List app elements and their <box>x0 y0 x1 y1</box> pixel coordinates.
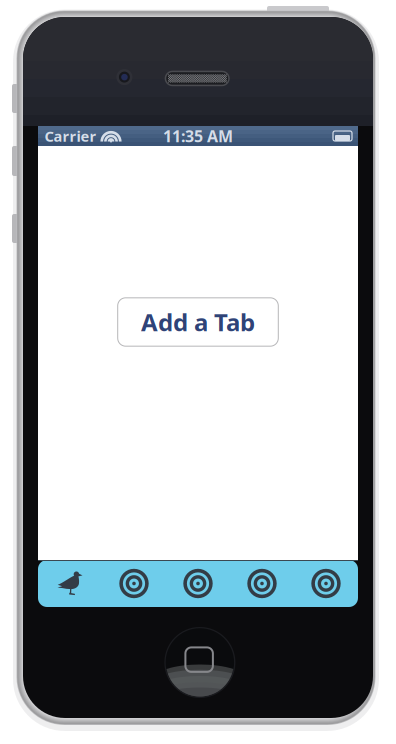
button[interactable]: Tab 4 <box>230 560 294 607</box>
button[interactable]: Tab 5 <box>294 560 358 607</box>
staticText: Add a Tab <box>141 306 255 338</box>
button[interactable]: Tab 2 <box>102 560 166 607</box>
button[interactable]: Add a Tab <box>118 298 278 346</box>
staticText: 11:35 AM <box>163 125 233 147</box>
button[interactable]: Tab 3 <box>166 560 230 607</box>
staticText: Carrier <box>44 126 96 146</box>
button[interactable]: Pigeon <box>38 560 102 607</box>
